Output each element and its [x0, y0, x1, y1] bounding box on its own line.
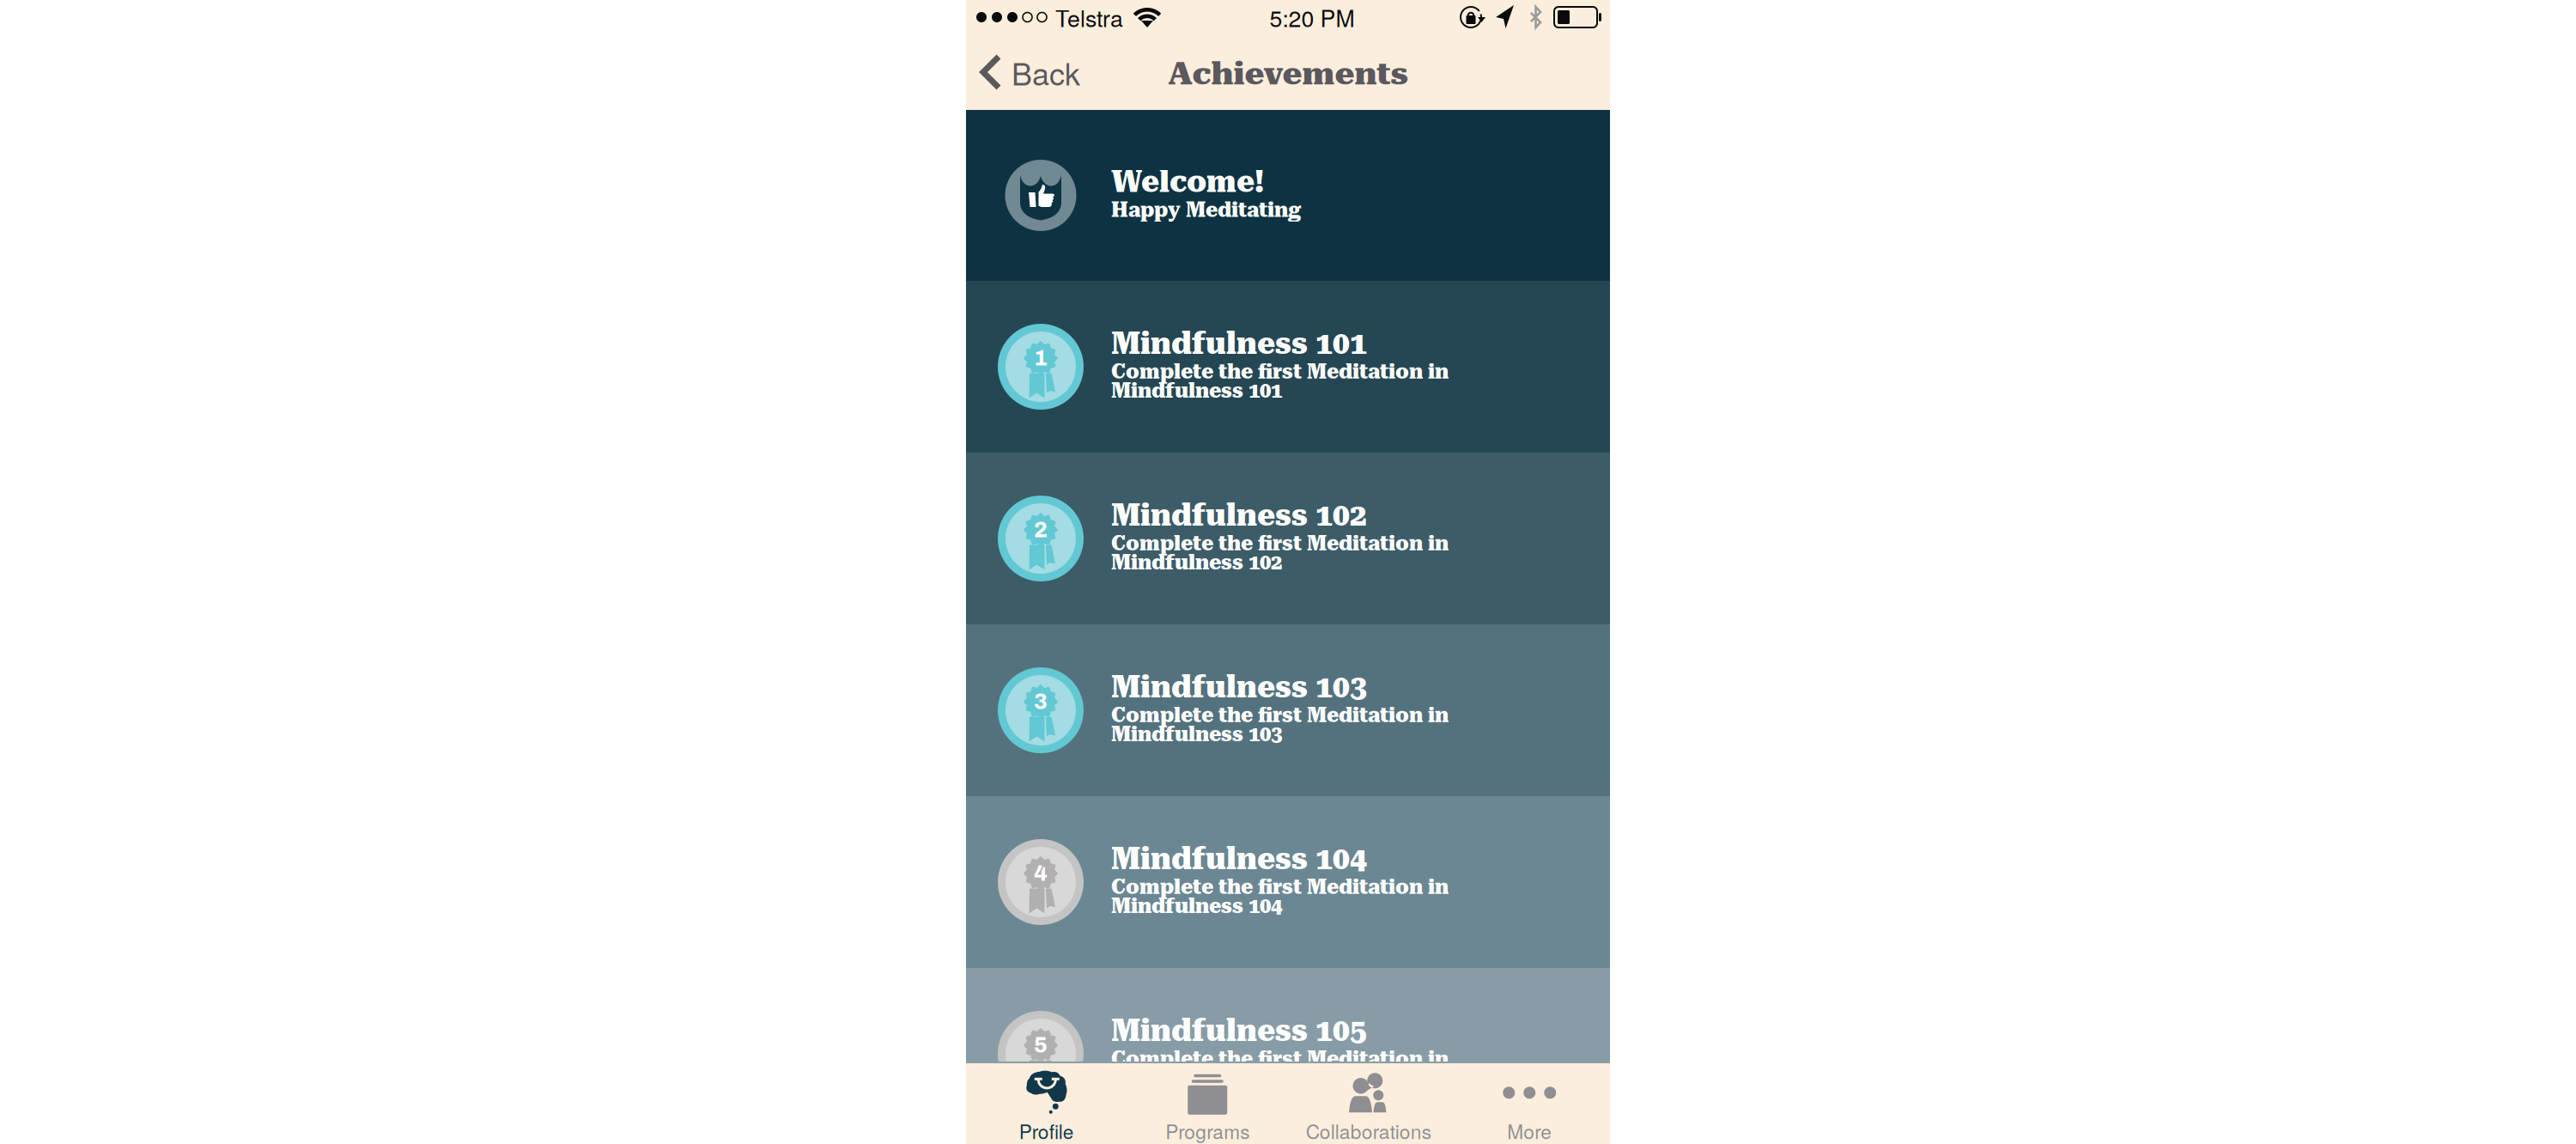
staticText: Mindfulness 105: [1111, 1013, 1367, 1048]
button[interactable]: 2: [966, 453, 1610, 624]
staticText: Programs: [1165, 1117, 1250, 1144]
staticText: Back: [1012, 50, 1080, 94]
staticText: Complete the first Meditation in Mindful…: [1111, 875, 1449, 918]
button[interactable]: Profile: [966, 1062, 1127, 1144]
staticText: Mindfulness 101: [1111, 326, 1367, 361]
staticText: Complete the first Meditation in Mindful…: [1111, 531, 1449, 574]
button[interactable]: More: [1449, 1062, 1610, 1144]
staticText: Achievements: [1168, 56, 1408, 92]
staticText: Complete the first Meditation in Mindful…: [1111, 703, 1449, 746]
staticText: Collaborations: [1306, 1117, 1431, 1144]
staticText: Profile: [1019, 1117, 1074, 1144]
staticText: Complete the first Meditation in Mindful…: [1111, 1047, 1449, 1090]
button[interactable]: Back: [966, 34, 1092, 110]
staticText: Welcome!: [1111, 164, 1264, 199]
staticText: Complete the first Meditation in Mindful…: [1111, 360, 1449, 403]
button[interactable]: 3: [966, 624, 1610, 796]
staticText: Mindfulness 104: [1111, 841, 1367, 877]
staticText: Mindfulness 102: [1111, 497, 1367, 533]
staticText: Telstra: [1055, 1, 1123, 34]
staticText: More: [1507, 1117, 1552, 1144]
staticText: 2: [1034, 518, 1048, 542]
staticText: 4: [1034, 862, 1048, 885]
staticText: Mindfulness 103: [1111, 669, 1367, 705]
button[interactable]: 1: [966, 281, 1610, 453]
staticText: Happy Meditating: [1111, 198, 1301, 222]
staticText: 3: [1034, 690, 1048, 714]
button[interactable]: Welcome!: [966, 110, 1610, 281]
staticText: 1: [1034, 346, 1048, 370]
button[interactable]: 4: [966, 796, 1610, 968]
button[interactable]: 5: [966, 968, 1610, 1140]
button[interactable]: Programs: [1127, 1062, 1288, 1144]
staticText: 5:20 PM: [1270, 1, 1355, 34]
button[interactable]: Collaborations: [1288, 1062, 1449, 1144]
staticText: 5: [1034, 1033, 1048, 1057]
